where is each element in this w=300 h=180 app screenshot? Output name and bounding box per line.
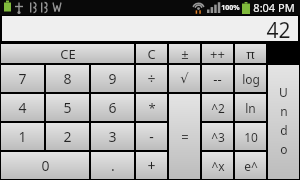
button[interactable]: - (136, 123, 167, 150)
button[interactable]: Equals (169, 94, 200, 179)
staticText: 7 (18, 69, 27, 88)
staticText: ± (181, 45, 189, 63)
staticText: 4 (18, 98, 27, 117)
staticText: ÷ (147, 69, 156, 88)
button[interactable]: 10 (235, 123, 266, 150)
staticText: 100% (221, 3, 240, 13)
button[interactable]: 7 (1, 65, 44, 92)
staticText: 9 (108, 69, 117, 88)
staticText: ln (245, 100, 256, 116)
staticText: e^ (244, 158, 258, 174)
button[interactable]: CE (1, 44, 134, 63)
staticText: * (148, 99, 156, 117)
staticText: ^2 (211, 100, 225, 116)
button[interactable]: e^ (235, 152, 266, 179)
staticText: - (149, 127, 154, 146)
button[interactable]: 2 (46, 123, 89, 150)
staticText: 8:04 PM (253, 0, 295, 15)
staticText: CE (60, 45, 76, 63)
staticText: ++ (210, 45, 225, 63)
staticText: π (246, 45, 255, 63)
button[interactable]: * (136, 94, 167, 121)
staticText: 5 (63, 98, 72, 117)
button[interactable]: C (136, 44, 167, 63)
button[interactable]: ++ (202, 44, 233, 63)
staticText: 0 (41, 156, 50, 175)
staticText: . (111, 156, 115, 175)
staticText: C (147, 45, 156, 63)
staticText: o (280, 141, 288, 157)
button[interactable]: 4 (1, 94, 44, 121)
staticText: 3 (108, 127, 117, 146)
button[interactable]: ± (169, 44, 200, 63)
staticText: √ (180, 71, 189, 86)
staticText: ^3 (211, 129, 225, 145)
staticText: log (242, 71, 260, 87)
staticText: 1 (18, 127, 27, 146)
button[interactable]: 1 (1, 123, 44, 150)
staticText: -- (213, 70, 222, 88)
button[interactable]: √ (169, 65, 200, 92)
button[interactable]: + (136, 152, 167, 179)
staticText: 6 (108, 98, 117, 117)
staticText: 42 (266, 16, 291, 41)
button[interactable]: Undo (268, 65, 299, 179)
button[interactable]: 9 (91, 65, 134, 92)
button[interactable]: 6 (91, 94, 134, 121)
staticText: n (280, 103, 288, 119)
staticText: + (147, 156, 156, 175)
staticText: 8 (63, 69, 72, 88)
button[interactable]: -- (202, 65, 233, 92)
button[interactable]: ^x (202, 152, 233, 179)
staticText: 10 (244, 129, 258, 145)
button[interactable]: ^3 (202, 123, 233, 150)
button[interactable]: 0 (1, 152, 89, 179)
staticText: 2 (63, 127, 72, 146)
button[interactable]: π (235, 44, 266, 63)
staticText: ^x (211, 158, 225, 174)
button[interactable]: ln (235, 94, 266, 121)
staticText: U (279, 84, 288, 100)
button[interactable]: ^2 (202, 94, 233, 121)
button[interactable]: 3 (91, 123, 134, 150)
button[interactable]: 5 (46, 94, 89, 121)
staticText: d (280, 122, 288, 138)
staticText: = (181, 128, 189, 146)
button[interactable]: Result display (2, 16, 298, 41)
button[interactable]: log (235, 65, 266, 92)
button[interactable]: 8 (46, 65, 89, 92)
button[interactable]: ÷ (136, 65, 167, 92)
button[interactable]: . (91, 152, 134, 179)
